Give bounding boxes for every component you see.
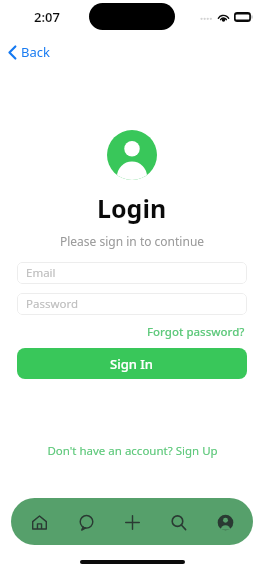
staticText: Login bbox=[97, 191, 167, 225]
button[interactable]: Back bbox=[0, 40, 60, 64]
staticText: Please sign in to continue bbox=[60, 233, 205, 249]
staticText: Password bbox=[26, 296, 79, 312]
button[interactable]: Sign In bbox=[17, 348, 247, 379]
button[interactable]: Home bbox=[21, 504, 57, 540]
button[interactable]: Messages bbox=[68, 504, 104, 540]
staticText: Forgot password? bbox=[147, 324, 245, 340]
button[interactable]: Profile bbox=[207, 504, 243, 540]
button[interactable]: Search bbox=[160, 504, 196, 540]
button[interactable]: Add bbox=[114, 504, 150, 540]
staticText: Back bbox=[21, 43, 50, 61]
staticText: Email bbox=[26, 265, 56, 281]
button[interactable]: Don't have an account? Sign Up bbox=[43, 441, 222, 461]
staticText: Don't have an account? Sign Up bbox=[47, 443, 218, 459]
button[interactable]: Email bbox=[17, 262, 247, 284]
button[interactable]: Forgot password? bbox=[145, 322, 247, 342]
staticText: 2:07 bbox=[34, 8, 60, 26]
button[interactable]: Password bbox=[17, 293, 247, 315]
staticText: Sign In bbox=[110, 355, 154, 373]
